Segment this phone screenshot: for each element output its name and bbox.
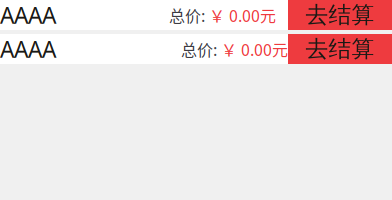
button[interactable]: 去结算 xyxy=(288,34,392,64)
button[interactable]: 去结算 xyxy=(288,0,392,30)
staticText: 去结算 xyxy=(305,1,374,29)
staticText: ￥ 0.00元 xyxy=(209,3,276,27)
staticText: AAAA xyxy=(0,0,56,30)
staticText: ￥ 0.00元 xyxy=(221,37,288,61)
staticText: 去结算 xyxy=(305,35,374,63)
staticText: 总价: xyxy=(169,3,209,27)
staticText: 总价: xyxy=(181,37,221,61)
staticText: AAAA xyxy=(0,34,56,64)
